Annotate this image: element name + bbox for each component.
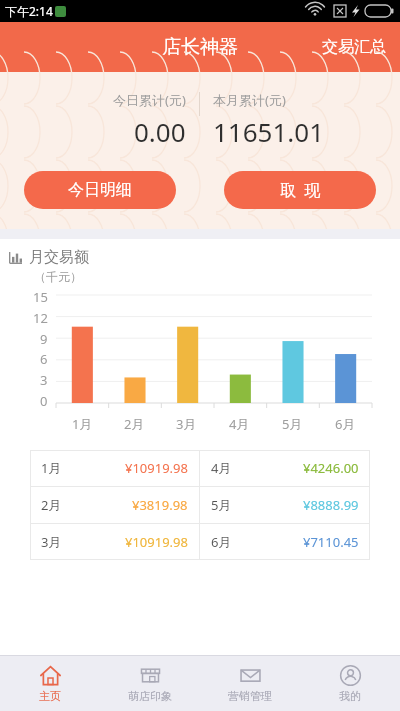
- staticText: 2月: [124, 415, 145, 433]
- staticText: ¥3819.98: [132, 496, 188, 514]
- staticText: （千元）: [34, 269, 82, 284]
- staticText: 6月: [211, 533, 232, 551]
- staticText: 4月: [211, 459, 232, 477]
- button[interactable]: 萌店印象: [100, 656, 200, 711]
- staticText: 萌店印象: [128, 689, 172, 703]
- button[interactable]: 今日明细: [24, 171, 176, 209]
- staticText: 今日累计(元): [113, 91, 186, 109]
- button[interactable]: 我的: [300, 656, 400, 711]
- staticText: 4月: [229, 415, 250, 433]
- staticText: 月交易额: [29, 248, 89, 267]
- staticText: 5月: [282, 415, 303, 433]
- staticText: ¥4246.00: [303, 459, 359, 477]
- staticText: 5月: [211, 496, 232, 514]
- staticText: 6: [40, 350, 48, 368]
- staticText: 12: [33, 309, 48, 327]
- staticText: 1月: [41, 459, 62, 477]
- staticText: 下午2:14: [5, 3, 53, 19]
- button[interactable]: 2月: [30, 487, 199, 523]
- button[interactable]: 营销管理: [200, 656, 300, 711]
- button[interactable]: 交易汇总: [308, 25, 400, 69]
- button[interactable]: 取 现: [224, 171, 376, 209]
- staticText: 6月: [335, 415, 356, 433]
- button[interactable]: 1月: [30, 450, 199, 486]
- staticText: 11651.01: [213, 114, 325, 149]
- staticText: 3: [40, 371, 48, 389]
- staticText: ¥10919.98: [125, 459, 188, 477]
- button[interactable]: 3月: [30, 524, 199, 560]
- staticText: 0: [40, 392, 48, 410]
- staticText: 我的: [339, 689, 361, 703]
- staticText: 1月: [72, 415, 93, 433]
- staticText: 3月: [176, 415, 197, 433]
- staticText: ¥8888.99: [303, 496, 359, 514]
- staticText: 店长神器: [162, 35, 238, 59]
- staticText: 15: [33, 288, 48, 306]
- staticText: ¥10919.98: [125, 533, 188, 551]
- staticText: 2月: [41, 496, 62, 514]
- staticText: 3月: [41, 533, 62, 551]
- staticText: 9: [40, 330, 48, 348]
- staticText: 交易汇总: [322, 37, 386, 57]
- staticText: 营销管理: [228, 689, 272, 703]
- staticText: 主页: [39, 689, 61, 703]
- button[interactable]: 4月: [200, 450, 370, 486]
- staticText: 今日明细: [68, 180, 132, 200]
- staticText: 取 现: [280, 179, 321, 201]
- button[interactable]: 主页: [0, 656, 100, 711]
- button[interactable]: 5月: [200, 487, 370, 523]
- staticText: 本月累计(元): [213, 91, 286, 109]
- button[interactable]: 6月: [200, 524, 370, 560]
- staticText: 0.00: [134, 114, 186, 149]
- staticText: ¥7110.45: [303, 533, 359, 551]
